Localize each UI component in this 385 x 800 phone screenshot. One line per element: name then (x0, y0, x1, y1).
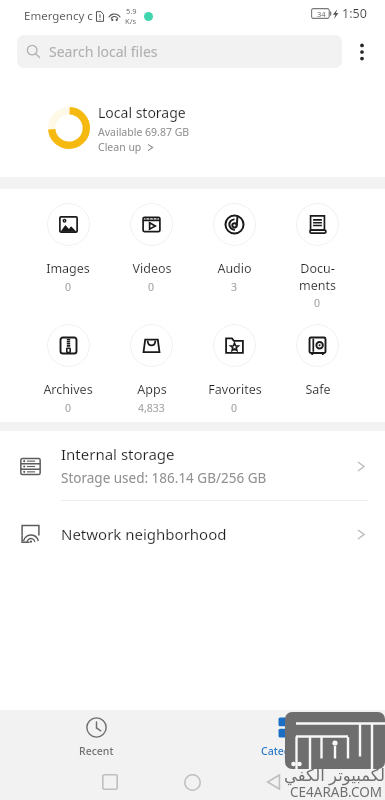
staticText: Safe (305, 381, 331, 398)
staticText: Internal storage (61, 444, 175, 464)
staticText: 0 (148, 280, 155, 294)
staticText: Local storage (98, 103, 186, 122)
staticText: Videos (132, 260, 172, 277)
staticText: 34 (317, 9, 326, 19)
button[interactable]: Home (176, 766, 208, 798)
button[interactable]: Docu- ments (276, 203, 359, 310)
staticText: Favorites (208, 381, 262, 398)
staticText: Categories (261, 744, 316, 758)
staticText: Emergency c (24, 8, 93, 24)
button[interactable]: Apps (110, 324, 193, 415)
button[interactable]: Videos (110, 203, 193, 294)
staticText: K/s (125, 16, 137, 26)
staticText: Search local files (49, 42, 158, 61)
staticText: Apps (137, 381, 167, 398)
staticText: 1:50 (342, 5, 367, 22)
button[interactable]: Local storage (0, 79, 385, 177)
button[interactable]: Images (26, 203, 110, 294)
button[interactable]: Search local files (17, 35, 342, 68)
button[interactable]: Audio (193, 203, 276, 294)
staticText: Audio (217, 260, 252, 277)
staticText: CE4ARAB.COM (290, 783, 383, 800)
staticText: Recent (79, 744, 114, 758)
button[interactable]: Recents (94, 766, 126, 798)
staticText: 0 (65, 401, 72, 415)
button[interactable]: Categories (192, 710, 385, 758)
staticText: Available 69.87 GB (98, 125, 190, 139)
staticText: Archives (43, 381, 93, 398)
staticText: Clean up (98, 140, 142, 154)
staticText: 0 (314, 296, 321, 310)
button[interactable]: Favorites (193, 324, 276, 415)
staticText: 0 (65, 280, 72, 294)
staticText: 5.9 (126, 6, 137, 16)
staticText: الكمبيوتر الكفي (284, 763, 385, 785)
button[interactable]: Back (258, 766, 290, 798)
button[interactable]: Internal storage (0, 431, 385, 501)
staticText: Storage used: 186.14 GB/256 GB (61, 469, 267, 487)
button[interactable]: Archives (26, 324, 110, 415)
staticText: 3 (231, 280, 238, 294)
staticText: Images (46, 260, 90, 277)
staticText: Network neighborhood (61, 524, 227, 544)
button[interactable]: More options (346, 34, 377, 69)
staticText: 4,833 (138, 401, 165, 415)
staticText: Docu- ments (299, 260, 336, 293)
button[interactable]: Recent (0, 710, 192, 758)
staticText: 0 (231, 401, 238, 415)
button[interactable]: Network neighborhood (0, 508, 385, 562)
button[interactable]: Safe (276, 324, 359, 398)
